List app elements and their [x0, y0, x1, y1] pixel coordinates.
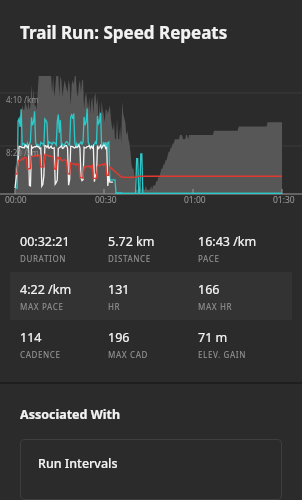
staticText: 8:20 /km — [6, 147, 39, 158]
staticText: CADENCE — [20, 349, 61, 360]
staticText: 166 — [198, 281, 220, 298]
staticText: Run Intervals — [38, 455, 118, 472]
staticText: ELEV. GAIN — [198, 349, 247, 360]
staticText: DISTANCE — [108, 253, 151, 264]
staticText: 5.72 km — [108, 233, 155, 250]
staticText: MAX PACE — [20, 301, 64, 312]
staticText: 114 — [20, 329, 42, 346]
staticText: 16:43 /km — [198, 233, 257, 250]
staticText: DURATION — [20, 253, 67, 264]
staticText: MAX CAD — [108, 349, 148, 360]
staticText: 01:00 — [184, 194, 206, 206]
staticText: HR — [108, 301, 121, 312]
staticText: 131 — [108, 281, 130, 298]
staticText: 01:30 — [273, 194, 295, 206]
button[interactable]: Run Intervals — [20, 439, 282, 500]
button[interactable]: 00:32:21 — [0, 224, 302, 272]
button[interactable]: 4:22 /km — [10, 272, 292, 320]
staticText: 00:32:21 — [20, 233, 70, 250]
staticText: 71 m — [198, 329, 228, 346]
button[interactable]: 114 — [0, 320, 302, 368]
staticText: Trail Run: Speed Repeats — [20, 21, 228, 44]
staticText: MAX HR — [198, 301, 233, 312]
staticText: 196 — [108, 329, 130, 346]
staticText: 00:30 — [95, 194, 117, 206]
staticText: 4:22 /km — [20, 281, 72, 298]
staticText: PACE — [198, 253, 220, 264]
staticText: 00:00 — [5, 194, 27, 206]
button[interactable]: Trail Run: Speed Repeats — [0, 0, 302, 58]
staticText: 4:10 /km — [6, 94, 39, 105]
staticText: Associated With — [20, 406, 121, 423]
